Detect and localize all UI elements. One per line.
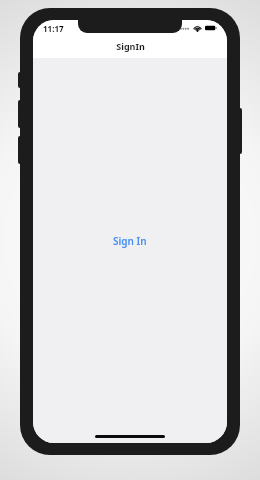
staticText: Sign In	[113, 234, 147, 248]
button[interactable]: Sign In	[107, 231, 153, 251]
staticText: SignIn	[116, 40, 145, 52]
staticText: 11:17	[43, 23, 64, 34]
